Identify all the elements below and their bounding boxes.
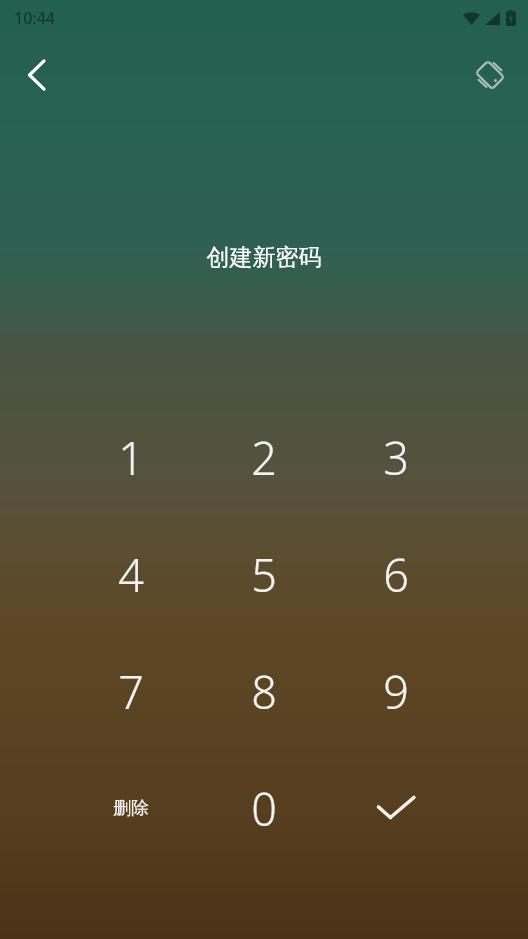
staticText: 8 [251, 661, 277, 722]
button[interactable]: 2 [217, 410, 311, 504]
staticText: 7 [118, 661, 144, 722]
staticText: 9 [383, 661, 409, 722]
button[interactable]: 4 [84, 527, 178, 621]
staticText: 0 [251, 778, 277, 839]
button[interactable]: 1 [84, 410, 178, 504]
button[interactable]: Confirm [349, 761, 443, 855]
button[interactable]: 6 [349, 527, 443, 621]
button[interactable]: 删除 [84, 761, 178, 855]
staticText: 10:44 [14, 7, 55, 29]
button[interactable]: 3 [349, 410, 443, 504]
button[interactable]: 8 [217, 644, 311, 738]
staticText: 3 [383, 427, 409, 488]
staticText: 删除 [113, 797, 149, 820]
staticText: 6 [383, 544, 409, 605]
staticText: 4 [118, 544, 144, 605]
staticText: 2 [251, 427, 277, 488]
staticText: 5 [251, 544, 277, 605]
staticText: 1 [118, 427, 144, 488]
button[interactable]: 5 [217, 527, 311, 621]
button[interactable]: Back [10, 48, 64, 102]
button[interactable]: 7 [84, 644, 178, 738]
button[interactable]: Rotate screen [464, 49, 516, 101]
button[interactable]: 9 [349, 644, 443, 738]
button[interactable]: 0 [217, 761, 311, 855]
staticText: 创建新密码 [0, 243, 528, 272]
